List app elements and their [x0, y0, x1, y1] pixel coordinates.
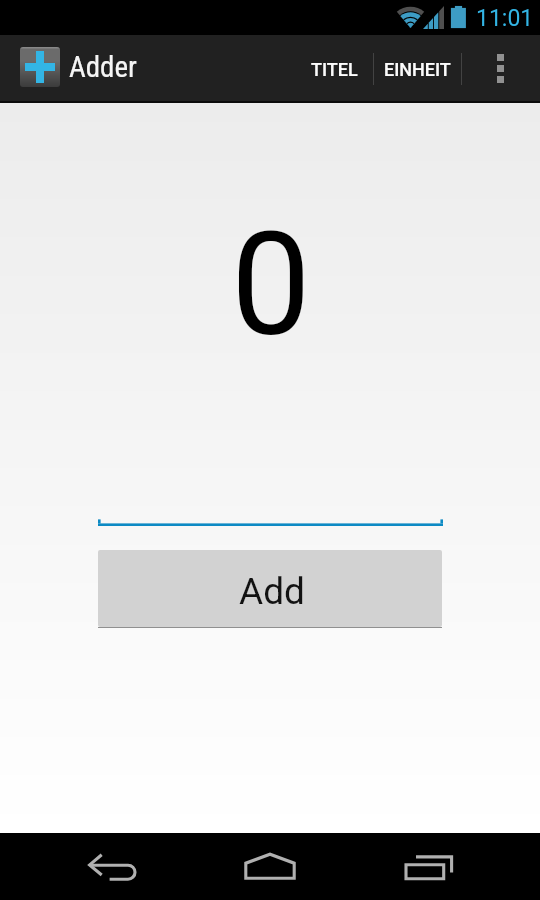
- staticText: Adder: [69, 50, 137, 84]
- button[interactable]: Back: [66, 833, 158, 900]
- staticText: TITEL: [311, 59, 358, 80]
- button[interactable]: EINHEIT: [373, 35, 461, 101]
- staticText: EINHEIT: [384, 59, 451, 80]
- button[interactable]: More options: [461, 35, 540, 101]
- button[interactable]: Home: [224, 833, 316, 900]
- staticText: 11:01: [476, 5, 534, 32]
- button[interactable]: Add: [98, 550, 442, 629]
- staticText: Add: [239, 570, 305, 613]
- button[interactable]: TITEL: [295, 35, 373, 101]
- staticText: 0: [231, 202, 311, 368]
- button[interactable]: Recent apps: [382, 833, 474, 900]
- button[interactable]: Adder: [0, 35, 160, 101]
